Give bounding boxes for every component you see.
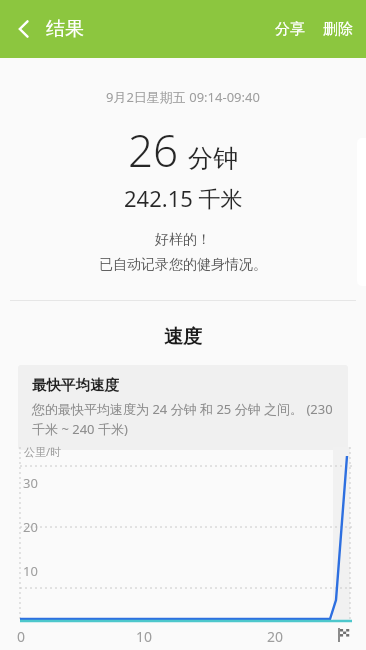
staticText: 分享 [275, 20, 305, 39]
staticText: 20 [23, 518, 38, 536]
button[interactable]: 最快平均速度 [18, 365, 348, 450]
staticText: 10 [23, 562, 38, 580]
staticText: 20 [267, 627, 284, 646]
staticText: 已自动记录您的健身情况。 [99, 256, 267, 274]
staticText: 好样的！ [155, 231, 211, 249]
staticText: 最快平均速度 [32, 376, 119, 394]
staticText: 删除 [323, 20, 353, 39]
staticText: 9月2日星期五 09:14-09:40 [106, 88, 260, 106]
button[interactable]: Back [2, 7, 46, 51]
staticText: 分钟 [188, 143, 238, 174]
staticText: 26 [128, 120, 179, 180]
staticText: 公里/时 [24, 444, 62, 459]
button[interactable]: 分享 [266, 6, 314, 53]
staticText: 242.15 千米 [124, 183, 243, 213]
staticText: 30 [23, 474, 38, 492]
staticText: 0 [17, 627, 26, 646]
staticText: 速度 [164, 325, 202, 349]
staticText: 10 [136, 627, 153, 646]
staticText: 您的最快平均速度为 24 分钟 和 25 分钟 之间。 (230 千米 ~ 24… [32, 400, 336, 438]
staticText: 结果 [46, 17, 84, 41]
button[interactable]: 删除 [314, 6, 362, 53]
